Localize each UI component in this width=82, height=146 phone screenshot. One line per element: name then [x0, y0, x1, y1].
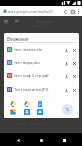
staticText: Тест картинка.JPG [14, 87, 62, 92]
button[interactable]: тест пдф 3 стр.pdf [4, 70, 79, 81]
staticText: тест эксель.xls [14, 47, 62, 52]
button[interactable]: Share target [6, 99, 20, 108]
button[interactable]: Remove [70, 72, 78, 80]
staticText: тест ворд.doc [14, 60, 62, 65]
button[interactable]: тест эксель.xls [4, 44, 79, 55]
staticText: Вложения [36, 19, 53, 24]
button[interactable]: Recents [59, 135, 69, 145]
button[interactable]: Remove [70, 86, 78, 94]
button[interactable]: Nearby Share [62, 104, 73, 115]
button[interactable]: Menu [3, 18, 9, 24]
button[interactable]: Back [13, 135, 23, 145]
button[interactable]: Download [62, 59, 70, 67]
button[interactable]: Download [62, 86, 70, 94]
button[interactable]: Тест картинка.JPG [4, 84, 79, 95]
button[interactable]: тест ворд.doc [4, 57, 79, 68]
button[interactable]: Share target [20, 107, 34, 116]
button[interactable]: Home [36, 135, 46, 145]
button[interactable]: Remove [70, 46, 78, 54]
staticText: Вложения [7, 36, 29, 42]
button[interactable]: Tabs [69, 8, 76, 15]
button[interactable]: Share target [20, 99, 34, 108]
staticText: mail.google.com/mail/u/0/#inbox [8, 9, 62, 14]
button[interactable]: Share target [6, 107, 20, 116]
button[interactable]: More options [76, 9, 81, 14]
button[interactable]: Download [62, 72, 70, 80]
button[interactable]: Download [62, 46, 70, 54]
button[interactable]: Share target [33, 99, 47, 108]
staticText: тест пдф 3 стр.pdf [14, 73, 62, 78]
button[interactable]: Reload [62, 8, 69, 15]
button[interactable]: Back [14, 18, 20, 24]
button[interactable]: Remove [70, 59, 78, 67]
button[interactable]: Share target [33, 107, 47, 116]
